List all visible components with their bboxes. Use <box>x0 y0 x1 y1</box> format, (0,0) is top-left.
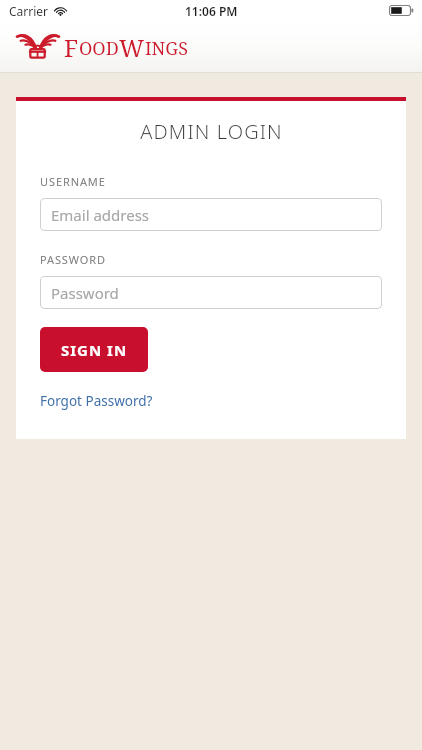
staticText: SIGN IN <box>61 340 128 360</box>
staticText: 11:06 PM <box>185 3 238 19</box>
staticText: USERNAME <box>40 174 106 189</box>
button[interactable]: Password <box>40 276 382 309</box>
staticText: Email address <box>51 205 150 225</box>
staticText: OOD <box>79 36 119 61</box>
button[interactable]: SIGN IN <box>40 327 148 372</box>
staticText: Carrier <box>9 3 49 19</box>
staticText: F <box>64 31 79 64</box>
staticText: W <box>119 31 145 64</box>
button[interactable]: Forgot Password? <box>40 392 153 410</box>
staticText: INGS <box>145 36 188 61</box>
button[interactable]: FoodWings home <box>14 31 188 64</box>
button[interactable]: Email address <box>40 198 382 231</box>
staticText: PASSWORD <box>40 252 106 267</box>
staticText: ADMIN LOGIN <box>140 118 283 145</box>
staticText: Password <box>51 283 119 303</box>
